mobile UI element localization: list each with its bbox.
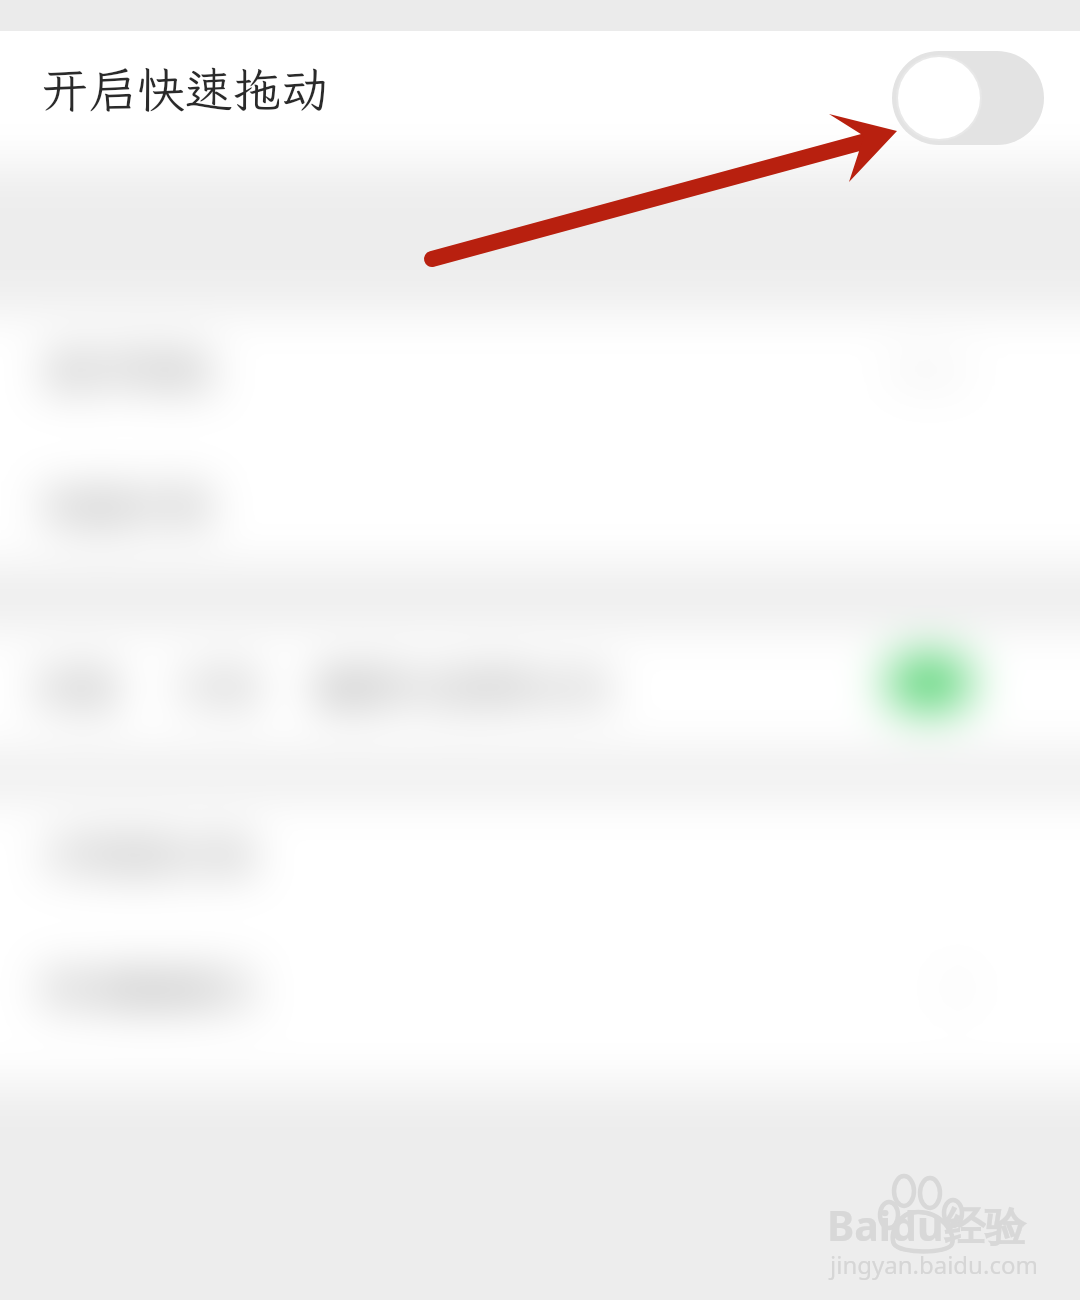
staticText: 开启快速拖动 bbox=[41, 57, 330, 120]
button[interactable]: Enable quick drag toggle bbox=[892, 51, 1044, 145]
staticText: 手势 bbox=[176, 660, 261, 715]
staticText: Baidu经验 bbox=[827, 1197, 1026, 1253]
staticText: 截屏与录屏方式 bbox=[316, 660, 611, 715]
button[interactable]: 快捷手势 bbox=[0, 473, 1080, 539]
staticText: 手势提示条 bbox=[44, 827, 255, 882]
staticText: 快捷手势 bbox=[44, 479, 213, 534]
staticText: jingyan.baidu.com bbox=[830, 1248, 1038, 1281]
button[interactable]: 音量 bbox=[0, 650, 1080, 716]
button[interactable]: 悬浮导航 bbox=[0, 336, 1080, 402]
button[interactable]: 手势提示条 bbox=[0, 821, 1080, 887]
staticText: 悬浮导航 bbox=[44, 342, 213, 397]
button[interactable]: 开启快速拖动 bbox=[0, 31, 1080, 164]
button[interactable]: 防误触模式 bbox=[0, 955, 1080, 1021]
staticText: 防误触模式 bbox=[44, 961, 255, 1016]
staticText: 音量 bbox=[34, 660, 119, 715]
